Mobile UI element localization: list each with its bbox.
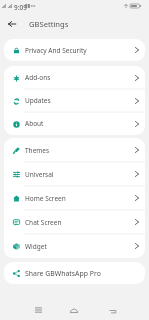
button[interactable]: Add-ons (4, 66, 145, 89)
staticText: GBSettings (29, 19, 69, 29)
button[interactable]: Back (0, 12, 24, 35)
button[interactable]: Home Screen (4, 186, 145, 210)
button[interactable]: Updates (4, 89, 145, 112)
staticText: Home Screen (25, 194, 66, 203)
button[interactable]: Chat Screen (4, 210, 145, 234)
staticText: Share GBWhatsApp Pro (25, 269, 101, 278)
staticText: Chat Screen (25, 218, 62, 227)
staticText: Widget (25, 242, 47, 251)
button[interactable]: Widget (4, 234, 145, 258)
button[interactable]: Share GBWhatsApp Pro (4, 262, 145, 284)
button[interactable]: Recent apps (28, 300, 48, 320)
staticText: Themes (25, 146, 50, 155)
staticText: Updates (25, 96, 51, 105)
staticText: Add-ons (25, 73, 51, 82)
staticText: 9:09 (14, 3, 27, 12)
staticText: Universal (25, 170, 54, 179)
button[interactable]: Privacy And Security (4, 39, 145, 61)
button[interactable]: Back (102, 300, 122, 320)
staticText: Privacy And Security (25, 46, 87, 55)
button[interactable]: Themes (4, 138, 145, 162)
button[interactable]: About (4, 112, 145, 135)
button[interactable]: Universal (4, 162, 145, 186)
button[interactable]: Home (64, 300, 84, 320)
staticText: About (25, 119, 44, 128)
